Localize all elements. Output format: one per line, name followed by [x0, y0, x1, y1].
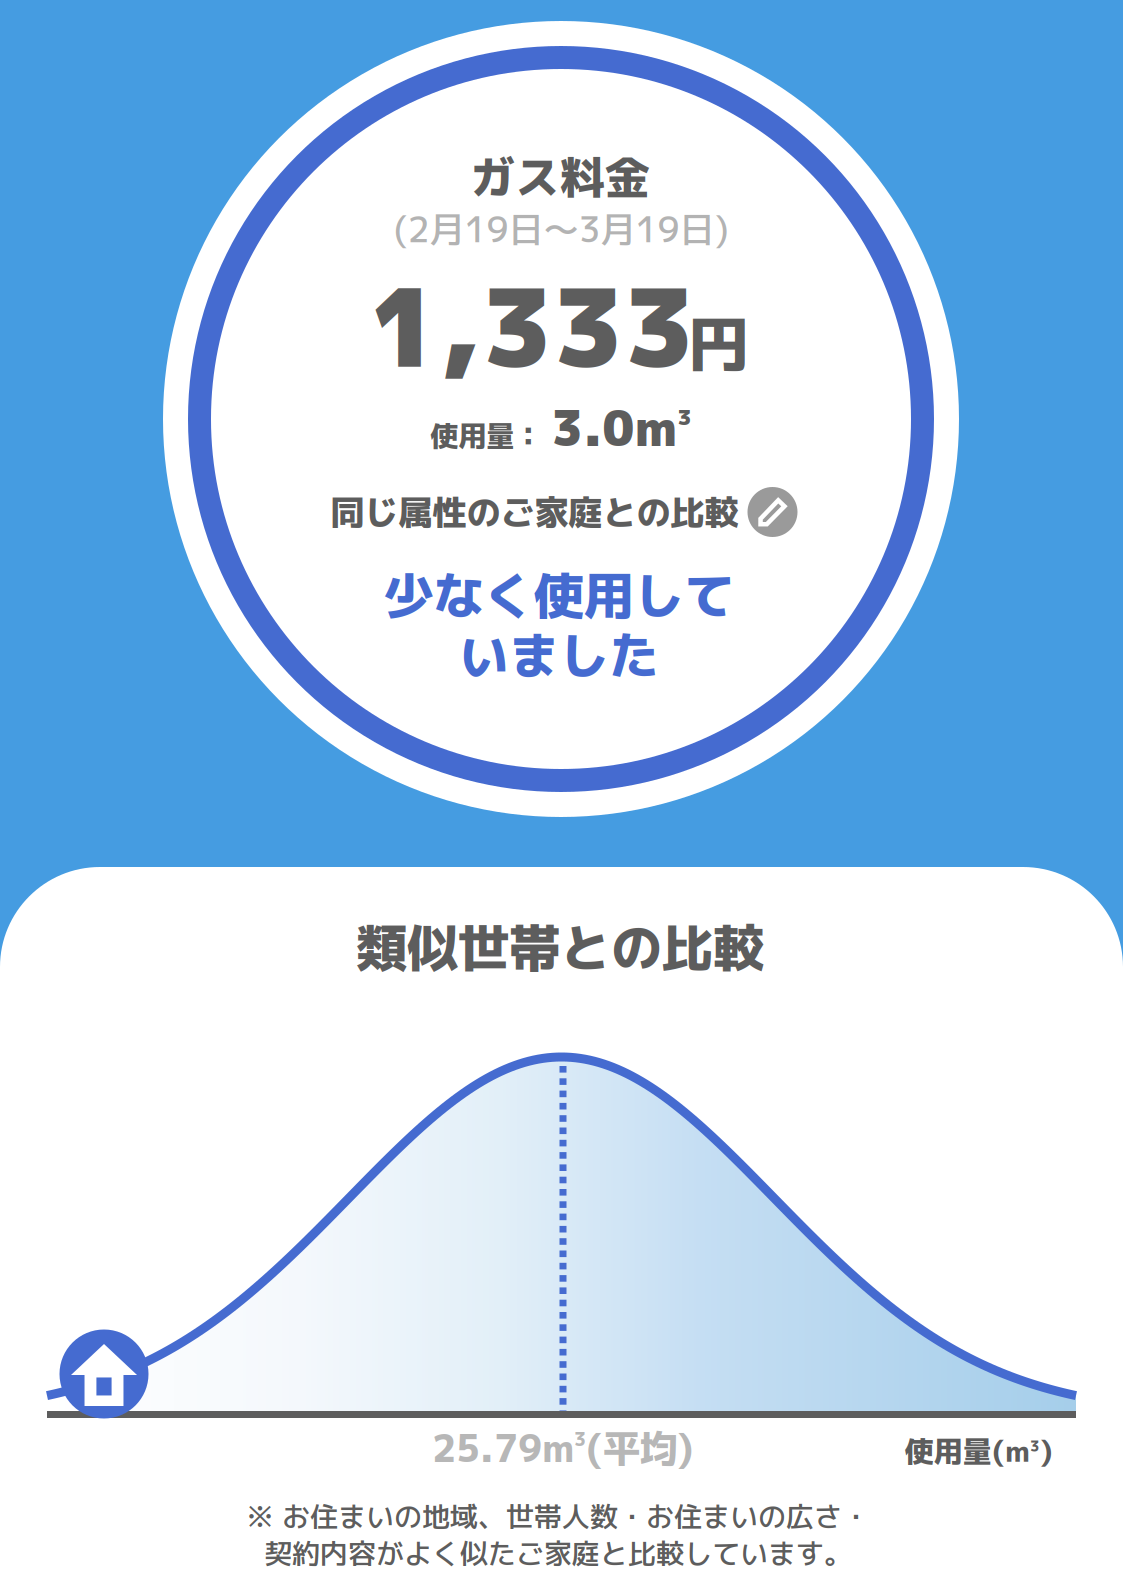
staticText: 1,333 [369, 251, 695, 401]
staticText: ガス料金 [470, 146, 650, 208]
staticText: いました [459, 620, 659, 690]
staticText: 3.0m3 [551, 395, 691, 461]
staticText: 類似世帯との比較 [356, 911, 764, 983]
staticText: (2月19日〜3月19日) [393, 204, 728, 254]
staticText: 25.79m3(平均) [432, 1423, 694, 1473]
staticText: 契約内容がよく似たご家庭と比較しています。 [264, 1534, 852, 1573]
staticText: 円 [688, 301, 749, 386]
button[interactable]: 同じ属性のご家庭との比較 [330, 487, 797, 537]
staticText: 使用量： [430, 416, 542, 455]
staticText: ※ お住まいの地域、世帯人数・お住まいの広さ・ [246, 1497, 870, 1536]
staticText: 使用量(m3) [905, 1431, 1053, 1471]
staticText: 少なく使用して [384, 560, 734, 630]
staticText: 同じ属性のご家庭との比較 [330, 488, 738, 536]
